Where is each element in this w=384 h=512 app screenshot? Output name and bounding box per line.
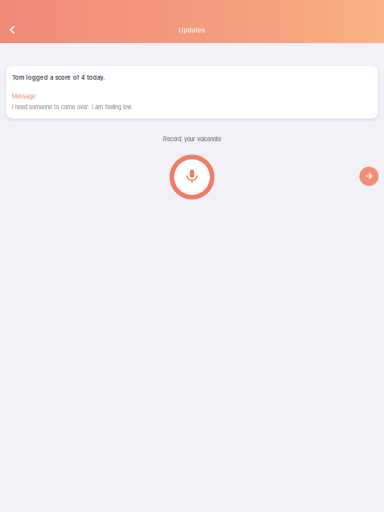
staticText: Tom logged a score of 4 today.	[12, 74, 105, 81]
button[interactable]: Continue	[358, 165, 380, 187]
staticText: Message:	[12, 93, 37, 100]
staticText: Record your voicenote	[163, 136, 221, 143]
button[interactable]: Record voicenote	[169, 155, 214, 200]
button[interactable]: Back	[0, 19, 25, 41]
staticText: I need someone to come over. I am feelin…	[12, 104, 133, 111]
staticText: Updates	[178, 26, 205, 34]
